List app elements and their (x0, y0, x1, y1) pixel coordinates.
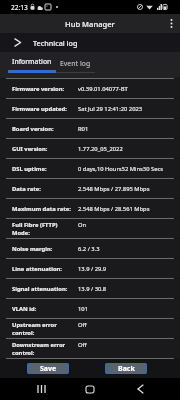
staticText: Hub Manager (65, 19, 115, 29)
staticText: 2.548 Mbps / 28.561 Mbps (78, 205, 174, 213)
staticText: Off (78, 321, 174, 329)
staticText: Upstream error control: (12, 321, 57, 336)
staticText: 101 (78, 305, 174, 313)
staticText: Off (78, 341, 174, 349)
staticText: Full Fibre (FTTP) Mode: (12, 221, 58, 236)
staticText: 1.77.20_05_2022 (78, 145, 174, 153)
staticText: Technical log (33, 38, 78, 48)
button[interactable]: Back (105, 363, 147, 374)
button[interactable]: Home (75, 378, 105, 400)
button[interactable]: Information (8, 52, 56, 78)
button[interactable]: Technical log (0, 33, 180, 52)
button[interactable]: Save (27, 363, 69, 374)
button[interactable]: More options (162, 14, 180, 33)
staticText: VLAN id: (12, 305, 37, 313)
staticText: Line attenuation: (12, 265, 62, 273)
staticText: Back (118, 364, 135, 374)
staticText: 13.9 / 30.8 (78, 285, 174, 293)
staticText: GUI version: (12, 145, 48, 153)
staticText: Sat Jul 29 12:41:20 2023 (78, 105, 174, 113)
staticText: 13.9 / 29.9 (78, 265, 174, 273)
staticText: Noise margin: (12, 245, 53, 253)
staticText: Firmware version: (12, 85, 65, 93)
staticText: Information (12, 57, 52, 66)
staticText: On (78, 221, 174, 229)
staticText: v0.39.01.04077-BT (78, 85, 174, 93)
staticText: Save (40, 364, 57, 374)
staticText: R01 (78, 125, 174, 133)
button[interactable]: Recents (26, 378, 56, 400)
staticText: Firmware updated: (12, 105, 67, 113)
staticText: Signal attenuation: (12, 285, 68, 293)
staticText: 2.548 Mbps / 27.895 Mbps (78, 185, 174, 193)
staticText: 6.2 / 3.3 (78, 245, 174, 253)
staticText: Downstream error control: (12, 341, 66, 356)
staticText: Board version: (12, 125, 54, 133)
button[interactable]: Back (125, 378, 155, 400)
staticText: Data rate: (12, 185, 41, 193)
staticText: Event log (60, 59, 91, 68)
staticText: DSL uptime: (12, 165, 47, 173)
button[interactable]: Event log (56, 52, 95, 78)
staticText: 22:13 (11, 3, 28, 12)
staticText: Maximum data rate: (12, 205, 71, 213)
staticText: 0 days,10 Hours52 Mins30 Secs (78, 165, 174, 173)
